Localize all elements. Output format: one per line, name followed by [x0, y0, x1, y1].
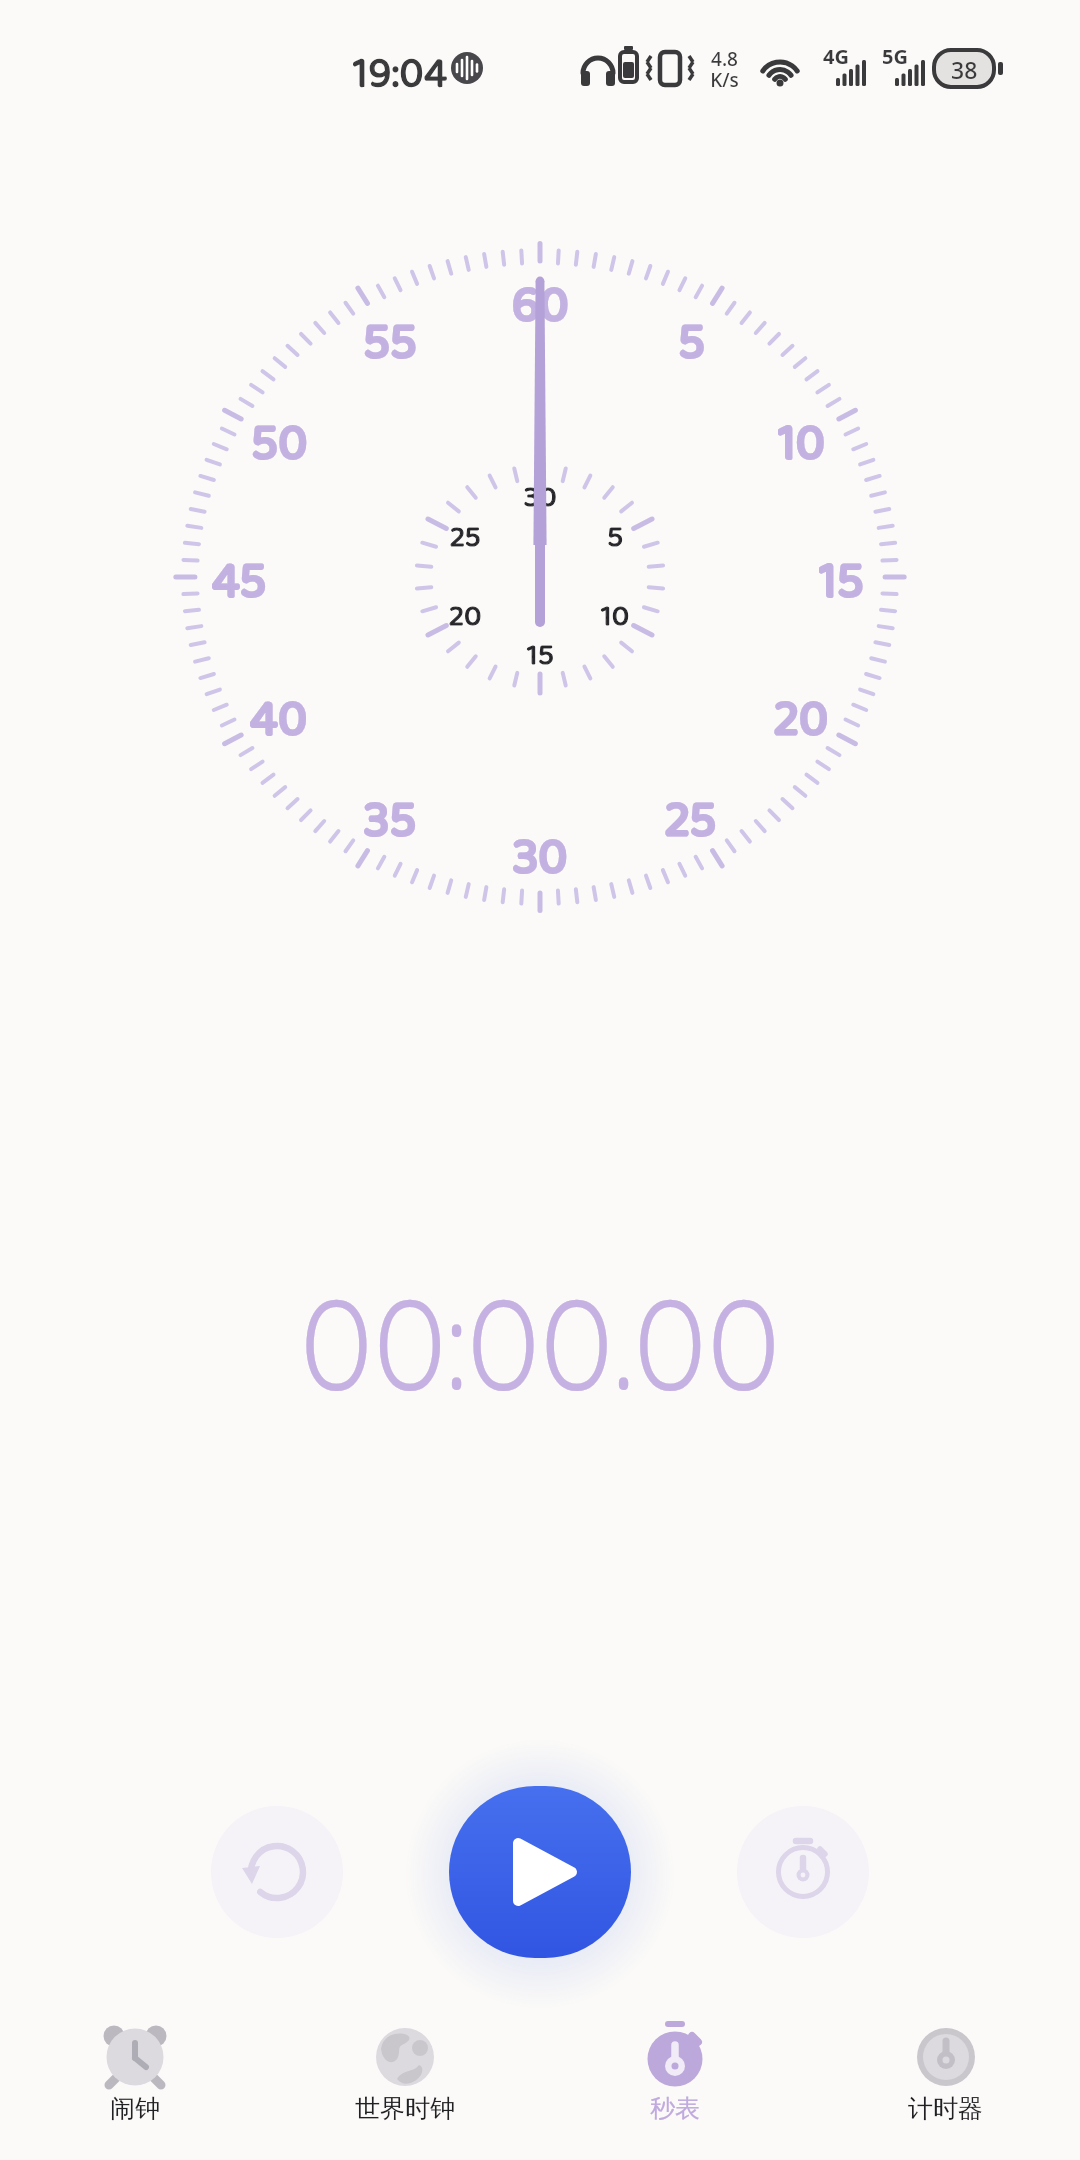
- staticText: 20: [449, 593, 482, 641]
- staticText: 50: [251, 404, 308, 474]
- staticText: 10: [778, 404, 825, 474]
- staticText: 00:00.00: [300, 1265, 781, 1420]
- staticText: 10: [778, 404, 825, 474]
- staticText: 55: [363, 303, 417, 373]
- staticText: 35: [364, 781, 417, 851]
- staticText: 5: [607, 514, 624, 562]
- staticText: 00:00.00: [300, 1265, 781, 1420]
- button[interactable]: 闹钟: [103, 2025, 167, 2124]
- staticText: 5: [678, 303, 705, 373]
- staticText: 4.8 K/s: [710, 46, 739, 93]
- staticText: 40: [250, 680, 308, 750]
- staticText: 闹钟: [110, 2093, 160, 2124]
- staticText: 25: [450, 514, 481, 562]
- button[interactable]: 秒表: [643, 2025, 707, 2124]
- staticText: 4G: [823, 43, 849, 70]
- staticText: 5: [607, 514, 624, 562]
- button[interactable]: [211, 1806, 343, 1938]
- staticText: 10: [601, 593, 630, 641]
- staticText: 25: [665, 781, 717, 851]
- staticText: 5: [678, 303, 705, 373]
- staticText: 60: [512, 266, 569, 336]
- staticText: 19:04: [353, 41, 448, 91]
- button[interactable]: [737, 1806, 869, 1938]
- staticText: 25: [450, 514, 481, 562]
- staticText: 15: [527, 632, 554, 680]
- staticText: 15: [819, 542, 864, 612]
- staticText: 45: [212, 542, 267, 612]
- staticText: 30: [524, 474, 557, 522]
- staticText: 25: [665, 781, 717, 851]
- button[interactable]: [449, 1786, 631, 1958]
- staticText: 20: [449, 593, 482, 641]
- staticText: 30: [513, 818, 568, 888]
- staticText: 60: [512, 266, 569, 336]
- staticText: 20: [774, 680, 829, 750]
- staticText: 35: [364, 781, 417, 851]
- staticText: 15: [819, 542, 864, 612]
- staticText: 15: [527, 632, 554, 680]
- staticText: 30: [513, 818, 568, 888]
- staticText: 38: [951, 54, 978, 85]
- staticText: 45: [212, 542, 267, 612]
- staticText: 20: [774, 680, 829, 750]
- staticText: 50: [251, 404, 308, 474]
- button[interactable]: 计时器: [908, 2025, 983, 2124]
- staticText: 10: [601, 593, 630, 641]
- staticText: 5G: [882, 43, 908, 70]
- staticText: 秒表: [650, 2093, 700, 2124]
- staticText: 55: [363, 303, 417, 373]
- staticText: 计时器: [908, 2093, 983, 2124]
- staticText: 40: [250, 680, 308, 750]
- button[interactable]: 世界时钟: [355, 2025, 455, 2124]
- staticText: 30: [524, 474, 557, 522]
- staticText: 世界时钟: [355, 2093, 455, 2124]
- staticText: 19:04: [353, 41, 448, 91]
